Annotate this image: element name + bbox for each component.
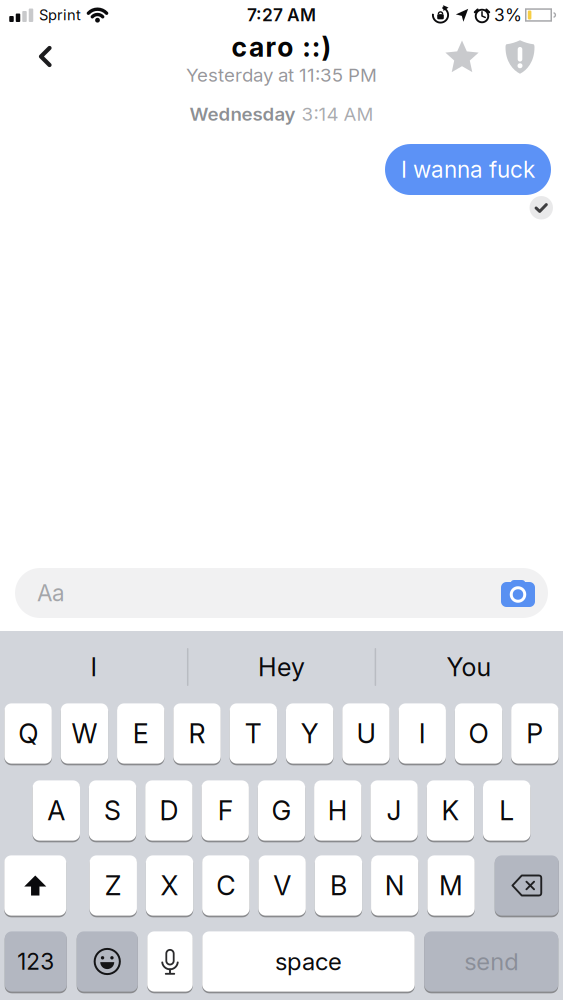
button[interactable]: D [145,780,193,841]
staticText: J [387,795,402,826]
button[interactable]: Q [4,703,52,764]
button[interactable]: F [201,780,249,841]
button[interactable]: V [258,855,306,916]
button[interactable]: W [61,703,108,764]
staticText: X [160,870,178,901]
staticText: Z [105,870,122,901]
staticText: Wednesday [189,103,295,125]
staticText: I wanna fuck [401,156,535,183]
staticText: caro ::) [231,31,332,63]
staticText: L [499,795,514,826]
button[interactable]: space [202,931,415,992]
button[interactable]: J [370,780,418,841]
button[interactable]: Dictate [147,931,193,992]
button[interactable]: X [146,855,193,916]
staticText: Aa [37,580,65,606]
button[interactable]: Y [286,703,333,764]
staticText: H [328,795,348,826]
button[interactable]: R [173,703,221,764]
button[interactable]: O [455,703,502,764]
staticText: D [159,795,178,826]
staticText: U [356,718,375,749]
button[interactable]: Shift [4,855,66,916]
button[interactable]: K [427,780,474,841]
staticText: I [419,718,426,749]
button[interactable]: Message input [15,568,548,618]
button[interactable]: I [399,703,446,764]
button[interactable]: U [342,703,390,764]
button[interactable]: Safety [505,40,535,74]
button[interactable]: Back [24,32,66,81]
button[interactable]: S [89,780,136,841]
staticText: O [469,718,489,749]
staticText: send [464,947,518,976]
staticText: Hey [258,652,305,682]
staticText: 3% [494,5,522,25]
staticText: Y [301,718,319,749]
button[interactable]: Hey [188,631,375,703]
button[interactable]: T [230,703,277,764]
staticText: Q [18,718,38,749]
staticText: P [526,718,543,749]
button[interactable]: E [117,703,164,764]
staticText: Sprint [39,6,81,24]
staticText: 123 [17,948,54,975]
button[interactable]: H [314,780,361,841]
staticText: S [104,795,121,826]
button[interactable]: B [315,855,362,916]
button[interactable]: M [427,855,475,916]
button[interactable]: C [202,855,249,916]
button[interactable]: 123 [5,931,67,992]
staticText: 3:14 AM [301,103,373,125]
staticText: W [71,718,97,749]
staticText: B [330,870,347,901]
button[interactable]: L [483,780,530,841]
button[interactable]: G [258,780,305,841]
button[interactable]: Emoji [77,931,138,992]
staticText: T [245,718,262,749]
button[interactable]: You [375,631,563,703]
staticText: space [275,947,342,976]
staticText: N [385,870,405,901]
staticText: 7:27 AM [247,5,316,25]
staticText: A [47,795,65,826]
button[interactable]: P [511,703,559,764]
staticText: M [439,870,463,901]
staticText: K [441,795,459,826]
staticText: You [447,652,492,682]
button[interactable]: Camera [501,579,535,607]
staticText: G [271,795,291,826]
button[interactable]: I [0,631,188,703]
staticText: I [90,652,97,682]
button[interactable]: send [424,931,558,992]
staticText: E [133,718,149,749]
staticText: Yesterday at 11:35 PM [186,64,377,86]
button[interactable]: Delete [495,855,559,916]
staticText: C [216,870,235,901]
button[interactable]: A [33,780,80,841]
button[interactable]: N [371,855,418,916]
staticText: V [273,870,291,901]
staticText: F [218,795,233,826]
button[interactable]: Favorite [444,39,479,74]
staticText: R [189,718,206,749]
button[interactable]: Z [89,855,137,916]
